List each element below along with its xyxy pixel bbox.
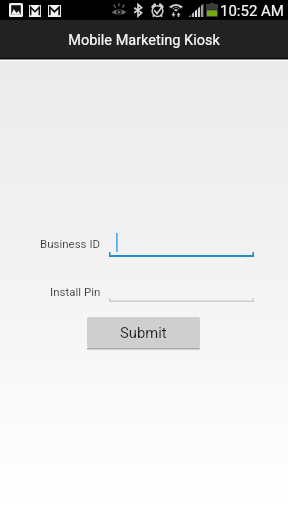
staticText: Submit xyxy=(120,324,167,341)
button[interactable]: Mobile Marketing Kiosk xyxy=(0,20,288,58)
button[interactable]: Submit xyxy=(87,317,200,348)
button[interactable]: Business ID text field xyxy=(109,231,254,257)
other: Alarm set xyxy=(150,3,165,17)
staticText: Business ID xyxy=(40,237,101,250)
other: Wi-Fi connected xyxy=(168,3,184,17)
staticText: Install Pin xyxy=(50,285,101,298)
staticText: Mobile Marketing Kiosk xyxy=(68,32,220,49)
other: Bluetooth on xyxy=(133,3,143,17)
other: Battery 50 percent xyxy=(206,3,218,17)
staticText: 10:52 AM xyxy=(220,2,284,20)
other: New mail xyxy=(29,5,41,17)
other: Mobile signal full xyxy=(188,3,204,17)
button[interactable]: Install Pin text field xyxy=(109,276,254,302)
other: Smart stay on xyxy=(111,3,127,17)
other: Screenshot captured xyxy=(9,3,23,17)
other: New mail xyxy=(48,5,61,17)
